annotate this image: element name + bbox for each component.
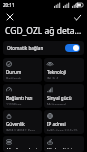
staticText: Bağlandı xyxy=(6,76,21,79)
staticText: Yönlendirici xyxy=(47,147,73,149)
staticText: Teknoloji xyxy=(47,69,67,75)
button[interactable]: Alt ağ maskesi xyxy=(3,136,42,152)
staticText: Durum xyxy=(6,69,22,75)
staticText: Bağlantı hızı xyxy=(6,95,33,101)
button[interactable]: Yönlendirici xyxy=(44,136,84,152)
staticText: CGD_OZL ağ detayları xyxy=(5,25,82,37)
staticText: 115Mbps xyxy=(6,102,22,105)
button[interactable]: Save xyxy=(71,11,83,23)
staticText: Wi-Fi 4 xyxy=(47,76,59,79)
staticText: fe80::feae:34:5c7f:3ea6 xyxy=(47,128,81,131)
staticText: Sinyal gücü xyxy=(47,95,72,101)
button[interactable]: Close xyxy=(4,11,16,23)
staticText: Mükemmel xyxy=(47,102,67,105)
button[interactable]: Bağlantı hızı xyxy=(3,84,42,108)
button[interactable]: Güvenlik xyxy=(3,110,42,134)
staticText: Alt ağ maskesi xyxy=(6,147,38,149)
button[interactable]: Otomatik bağlan xyxy=(3,41,84,55)
button[interactable]: Teknoloji xyxy=(44,58,84,82)
staticText: WPA3-WPA2-Personal xyxy=(6,128,39,131)
staticText: Otomatik bağlan xyxy=(7,45,44,51)
staticText: IP adresi xyxy=(47,121,66,127)
button[interactable]: IP adresi xyxy=(44,110,84,134)
button[interactable]: Durum xyxy=(3,58,42,82)
staticText: 20:11 xyxy=(3,2,15,8)
staticText: Güvenlik xyxy=(6,121,25,127)
button[interactable]: Sinyal gücü xyxy=(44,84,84,108)
